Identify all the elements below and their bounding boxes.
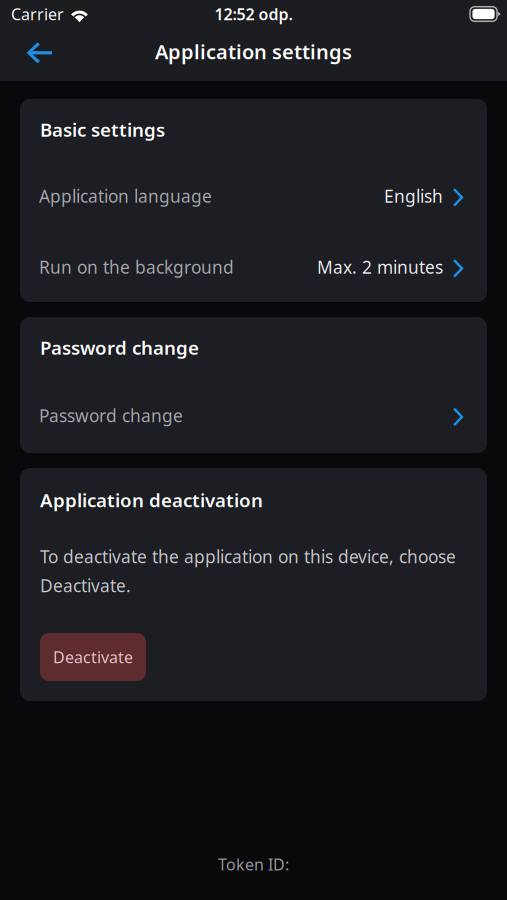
- button[interactable]: Application language: [20, 160, 487, 232]
- staticText: 12:52 odp.: [214, 3, 292, 25]
- staticText: Password change: [39, 404, 183, 427]
- staticText: Token ID:: [218, 854, 289, 875]
- button[interactable]: Back: [0, 31, 66, 78]
- staticText: Run on the background: [39, 255, 234, 278]
- staticText: To deactivate the application on this de…: [40, 545, 456, 597]
- button[interactable]: Deactivate: [40, 633, 146, 681]
- staticText: Application settings: [155, 38, 352, 65]
- staticText: Deactivate: [53, 646, 133, 668]
- staticText: Max. 2 minutes: [317, 255, 443, 278]
- staticText: Application deactivation: [40, 488, 263, 512]
- staticText: Basic settings: [40, 117, 165, 142]
- staticText: Password change: [40, 335, 199, 360]
- button[interactable]: Run on the background: [20, 232, 487, 302]
- staticText: English: [384, 184, 443, 207]
- button[interactable]: Password change: [20, 378, 487, 453]
- staticText: Application language: [39, 184, 212, 207]
- staticText: Carrier: [11, 3, 64, 25]
